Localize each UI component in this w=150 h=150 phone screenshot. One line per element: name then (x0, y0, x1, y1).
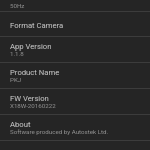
button[interactable]: FW Version (0, 89, 150, 114)
staticText: Format Camera (10, 21, 64, 30)
staticText: 50Hz (10, 2, 25, 9)
staticText: Product Name (10, 68, 60, 77)
staticText: App Version (10, 42, 52, 51)
button[interactable]: Light frequency 50Hz (0, 0, 150, 11)
button[interactable]: About (0, 115, 150, 140)
staticText: About (10, 120, 31, 129)
button[interactable]: App Version (0, 37, 150, 62)
staticText: Software produced by Autostek Ltd. (10, 128, 109, 135)
staticText: X18W-20160222 (10, 102, 56, 109)
staticText: FW Version (10, 94, 49, 103)
staticText: PKJ (10, 76, 22, 83)
button[interactable]: Product Name (0, 63, 150, 88)
staticText: 1.1.8 (10, 50, 24, 57)
button[interactable]: Format Camera (0, 12, 150, 36)
